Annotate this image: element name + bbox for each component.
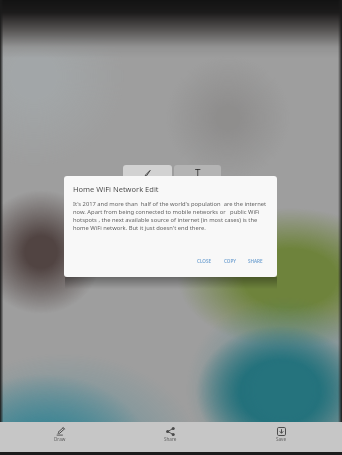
staticText: Share [164,436,177,442]
staticText: It's 2017 and more than half of the worl… [73,200,271,232]
staticText: CLOSE [197,258,211,264]
staticText: Home WiFi Network Edit [73,184,159,194]
button[interactable]: COPY [222,255,238,267]
button[interactable]: Draw [5,422,115,452]
button[interactable]: Pen tool [123,165,172,181]
button[interactable]: SHARE [246,255,265,267]
button[interactable]: Text tool [174,165,221,181]
staticText: COPY [224,258,236,264]
button[interactable]: Save [226,422,337,452]
staticText: T [195,166,201,180]
button[interactable]: CLOSE [195,255,213,267]
staticText: Save [276,436,287,442]
button[interactable]: Share [115,422,226,452]
staticText: SHARE [248,258,263,264]
staticText: Draw [54,436,66,442]
